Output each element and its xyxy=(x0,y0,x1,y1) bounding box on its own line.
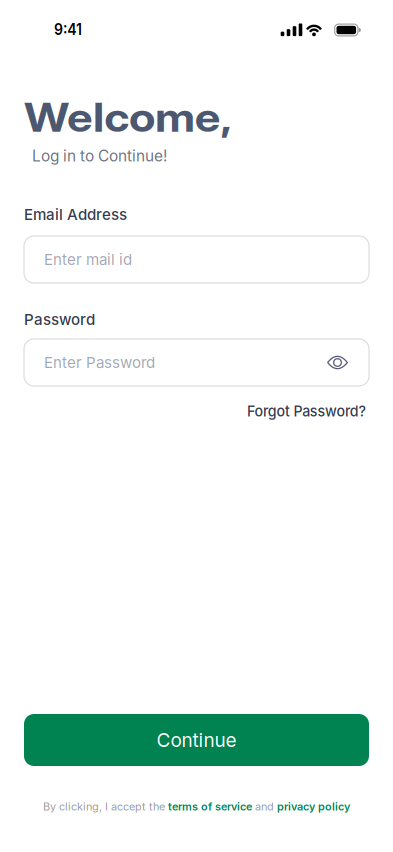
staticText: Continue xyxy=(156,728,236,751)
staticText: By clicking, I accept the xyxy=(43,800,168,813)
staticText: 9:41 xyxy=(52,19,84,39)
staticText: Welcome, xyxy=(24,93,208,141)
staticText: and xyxy=(252,800,277,813)
staticText: terms of service xyxy=(168,800,252,813)
staticText: Log in to Continue! xyxy=(32,147,167,165)
staticText: privacy policy xyxy=(277,800,350,813)
staticText: Forgot Password? xyxy=(241,402,366,420)
button[interactable]: terms of service xyxy=(168,800,252,813)
button[interactable]: Continue xyxy=(24,714,369,766)
button[interactable] xyxy=(327,356,348,369)
staticText: Enter Password xyxy=(44,353,155,372)
staticText: Enter mail id xyxy=(44,250,132,269)
button[interactable]: Forgot Password? xyxy=(241,402,366,420)
button[interactable]: Enter mail id xyxy=(24,236,369,283)
staticText: Email Address xyxy=(24,205,127,224)
button[interactable]: privacy policy xyxy=(277,800,350,813)
staticText: Password xyxy=(24,310,95,329)
button[interactable]: Enter Password xyxy=(24,339,369,386)
